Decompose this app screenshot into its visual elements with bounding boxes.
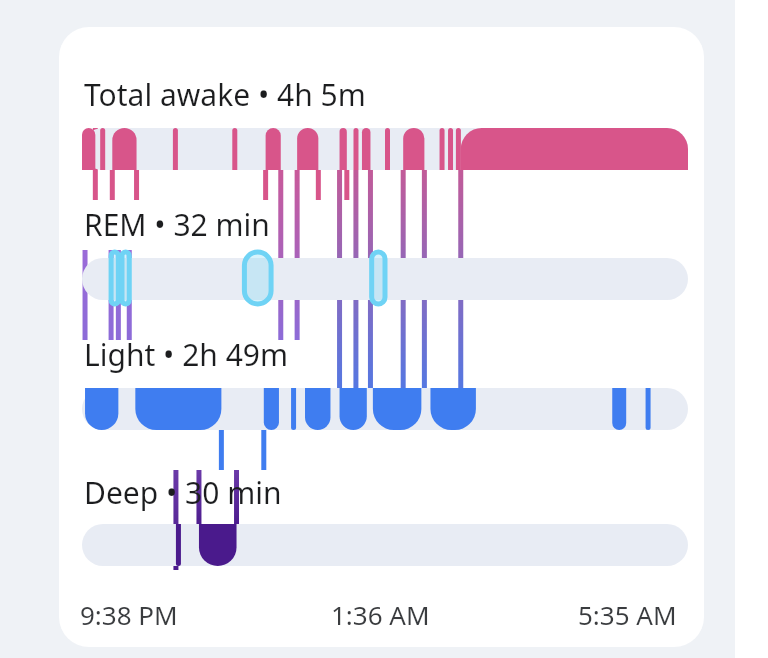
button[interactable]: Sleep stages chart	[0, 0, 768, 658]
